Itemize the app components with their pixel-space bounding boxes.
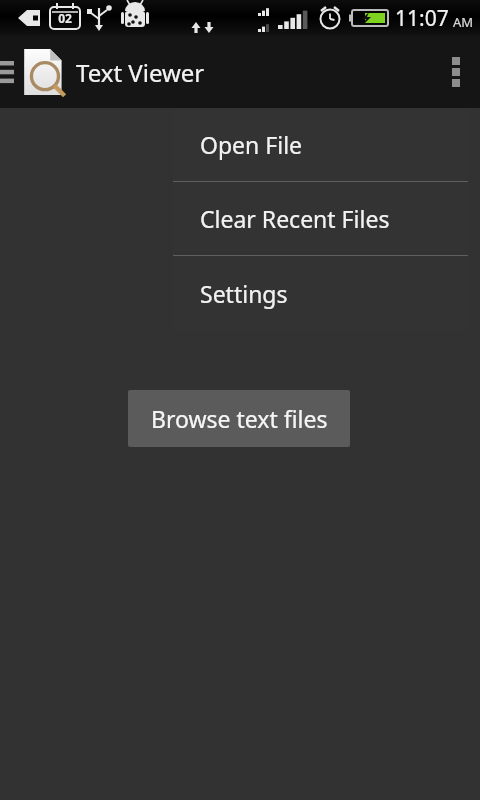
staticText: AM [453, 13, 474, 31]
staticText: Text Viewer [76, 56, 205, 89]
button[interactable]: Clear Recent Files [173, 182, 468, 255]
staticText: 11:07 [395, 4, 449, 33]
button[interactable]: Browse text files [128, 390, 350, 447]
staticText: 02 [58, 10, 72, 26]
staticText: Clear Recent Files [200, 203, 390, 234]
button[interactable]: More options [432, 36, 480, 108]
staticText: Browse text files [151, 403, 328, 434]
button[interactable]: Open File [173, 108, 468, 181]
button[interactable]: Settings [173, 256, 468, 331]
button[interactable]: Navigation drawer [0, 52, 22, 92]
staticText: Open File [200, 129, 303, 160]
staticText: Settings [200, 278, 288, 309]
